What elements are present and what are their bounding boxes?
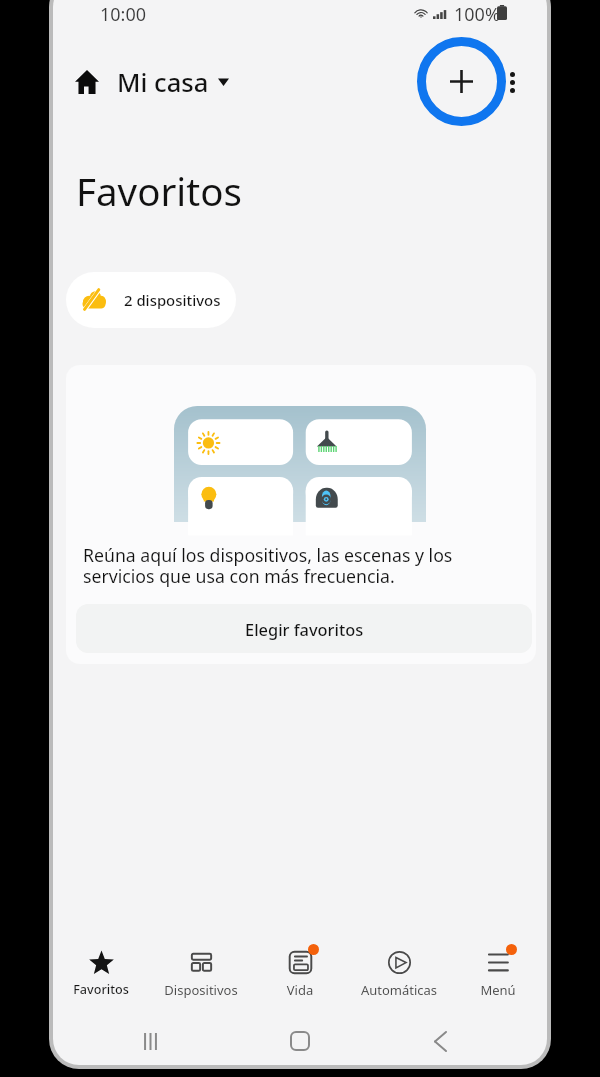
staticText: 100% bbox=[454, 2, 500, 27]
staticText: Automáticas bbox=[350, 981, 448, 999]
staticText: Vida bbox=[251, 981, 349, 999]
staticText: Menú bbox=[449, 981, 547, 999]
button[interactable]: Menú bbox=[449, 943, 547, 1001]
button[interactable]: Automáticas bbox=[350, 943, 448, 1001]
staticText: Favoritos bbox=[53, 981, 150, 998]
button[interactable]: More options bbox=[505, 63, 519, 101]
button[interactable]: Mi casa bbox=[75, 63, 229, 101]
staticText: Mi casa bbox=[117, 65, 209, 100]
button[interactable]: Home bbox=[260, 1021, 340, 1061]
button[interactable]: 2 dispositivos bbox=[66, 272, 236, 328]
staticText: Favoritos bbox=[76, 165, 242, 217]
staticText: Reúna aquí los dispositivos, las escenas… bbox=[83, 543, 453, 588]
button[interactable]: Recents bbox=[110, 1021, 190, 1061]
staticText: 2 dispositivos bbox=[124, 290, 221, 310]
button[interactable]: Dispositivos bbox=[152, 943, 250, 1001]
button[interactable]: Favoritos bbox=[53, 943, 150, 1001]
staticText: Dispositivos bbox=[152, 981, 250, 999]
button[interactable]: Back bbox=[400, 1021, 480, 1061]
button[interactable]: Elegir favoritos bbox=[76, 604, 532, 653]
staticText: Elegir favoritos bbox=[245, 618, 364, 640]
button[interactable]: Add device bbox=[417, 37, 507, 127]
button[interactable]: Vida bbox=[251, 943, 349, 1001]
staticText: 10:00 bbox=[100, 2, 147, 27]
